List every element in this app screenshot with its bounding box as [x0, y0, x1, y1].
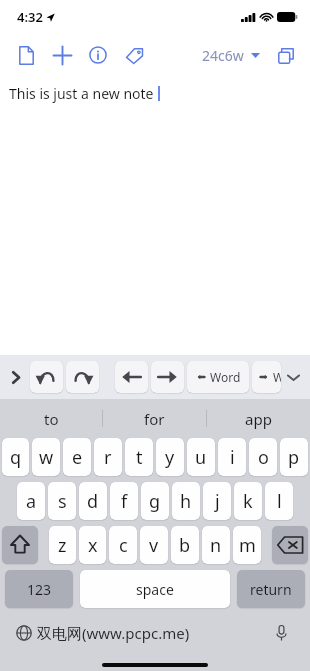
staticText: for — [144, 409, 165, 429]
staticText: s — [58, 489, 67, 514]
staticText: p — [288, 445, 300, 470]
button[interactable]: e — [63, 438, 91, 476]
button[interactable]: W — [252, 361, 281, 393]
staticText: 双电网(www.pcpc.me) — [37, 623, 190, 643]
button[interactable]: o — [249, 438, 277, 476]
staticText: b — [179, 533, 191, 558]
staticText: 24c6w — [202, 46, 244, 65]
button[interactable]: j — [203, 482, 231, 520]
button[interactable]: b — [171, 526, 199, 564]
button[interactable]: l — [265, 482, 293, 520]
button[interactable]: for — [103, 399, 206, 438]
staticText: n — [210, 533, 222, 558]
staticText: space — [136, 580, 174, 599]
staticText: to — [44, 409, 59, 429]
staticText: e — [72, 445, 83, 470]
button[interactable]: Change keyboard — [12, 621, 36, 645]
staticText: return — [250, 580, 292, 599]
button[interactable]: k — [234, 482, 262, 520]
staticText: w — [39, 445, 54, 470]
staticText: o — [258, 445, 269, 470]
button[interactable]: i — [218, 438, 246, 476]
staticText: This is just a new note — [9, 84, 154, 103]
staticText: z — [58, 533, 67, 558]
staticText: Word — [210, 369, 241, 385]
button[interactable]: Delete — [272, 526, 308, 564]
button[interactable]: n — [202, 526, 230, 564]
button[interactable]: d — [79, 482, 107, 520]
button[interactable]: Shift — [2, 526, 38, 564]
button[interactable]: h — [172, 482, 200, 520]
button[interactable]: Duplicate — [270, 40, 302, 72]
button[interactable]: 123 — [5, 570, 73, 608]
button[interactable]: Undo — [30, 361, 63, 393]
button[interactable]: s — [48, 482, 76, 520]
button[interactable]: a — [17, 482, 45, 520]
button[interactable]: Word — [187, 361, 249, 393]
staticText: q — [10, 445, 22, 470]
button[interactable]: More — [5, 359, 27, 395]
staticText: a — [26, 489, 37, 514]
staticText: g — [149, 489, 161, 514]
button[interactable]: m — [233, 526, 261, 564]
staticText: 123 — [27, 580, 52, 599]
button[interactable]: x — [79, 526, 106, 564]
button[interactable]: Move cursor right — [151, 361, 184, 393]
staticText: m — [239, 533, 256, 558]
staticText: x — [88, 533, 98, 558]
button[interactable]: w — [32, 438, 60, 476]
button[interactable]: g — [141, 482, 169, 520]
staticText: y — [165, 445, 175, 470]
button[interactable]: Add — [44, 37, 80, 73]
button[interactable]: Tag — [116, 37, 152, 73]
button[interactable]: q — [2, 438, 29, 476]
button[interactable]: Hide keyboard — [281, 359, 305, 395]
button[interactable]: t — [125, 438, 153, 476]
staticText: l — [277, 489, 282, 514]
staticText: c — [119, 533, 128, 558]
button[interactable]: y — [156, 438, 184, 476]
button[interactable]: Redo — [66, 361, 99, 393]
button[interactable]: Move cursor left — [115, 361, 148, 393]
button[interactable]: r — [94, 438, 122, 476]
button[interactable]: v — [140, 526, 168, 564]
button[interactable]: Dictation — [269, 621, 293, 645]
staticText: app — [245, 409, 272, 429]
button[interactable]: Info — [80, 37, 116, 73]
staticText: u — [195, 445, 207, 470]
button[interactable]: u — [187, 438, 215, 476]
staticText: W — [273, 369, 281, 385]
staticText: 4:32 — [17, 8, 43, 26]
button[interactable]: to — [0, 399, 102, 438]
button[interactable]: z — [49, 526, 76, 564]
staticText: k — [243, 489, 253, 514]
staticText: r — [104, 445, 112, 470]
button[interactable]: New document — [8, 37, 44, 73]
button[interactable]: space — [80, 570, 230, 608]
button[interactable]: app — [207, 399, 310, 438]
button[interactable]: p — [280, 438, 308, 476]
staticText: j — [215, 489, 220, 514]
button[interactable]: 24c6w — [198, 39, 264, 72]
button[interactable]: c — [109, 526, 137, 564]
staticText: h — [180, 489, 192, 514]
staticText: i — [230, 445, 235, 470]
button[interactable]: f — [110, 482, 138, 520]
staticText: f — [121, 489, 128, 514]
staticText: t — [136, 445, 143, 470]
button[interactable]: return — [237, 570, 305, 608]
staticText: v — [149, 533, 159, 558]
staticText: d — [87, 489, 99, 514]
